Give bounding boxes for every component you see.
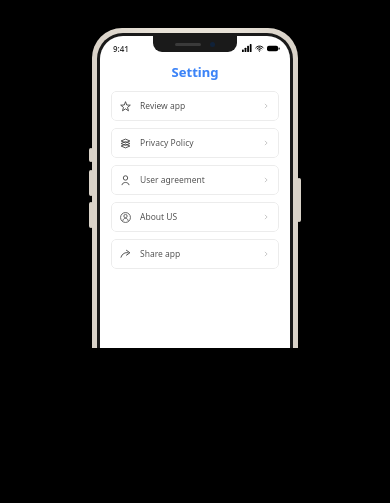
- staticText: About US: [140, 211, 178, 223]
- staticText: Review app: [140, 100, 186, 112]
- button[interactable]: User agreement: [111, 165, 279, 195]
- button[interactable]: Privacy Policy: [111, 128, 279, 158]
- staticText: User agreement: [140, 174, 205, 186]
- button[interactable]: Review app: [111, 91, 279, 121]
- staticText: Share app: [140, 248, 181, 260]
- button[interactable]: About US: [111, 202, 279, 232]
- staticText: Setting: [100, 63, 290, 81]
- button[interactable]: Share app: [111, 239, 279, 269]
- staticText: Privacy Policy: [140, 137, 194, 149]
- staticText: 9:41: [113, 43, 129, 54]
